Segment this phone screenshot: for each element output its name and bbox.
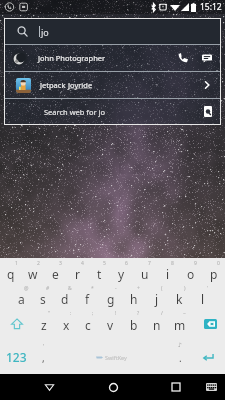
button[interactable]: John Photographer <box>5 45 220 71</box>
button[interactable]: Search web <box>196 99 220 124</box>
staticText: r <box>75 266 80 282</box>
staticText: a <box>18 291 25 307</box>
staticText: 8 <box>171 260 174 267</box>
button[interactable]: 8 <box>156 261 179 285</box>
staticText: # <box>46 285 50 292</box>
button[interactable]: Space <box>54 340 169 374</box>
button[interactable]: 6 <box>110 261 133 285</box>
staticText: : <box>70 310 72 317</box>
button[interactable]: 7 <box>133 261 156 285</box>
button[interactable]: Search web for jo <box>5 99 220 124</box>
staticText: g <box>107 291 115 307</box>
staticText: k <box>176 291 183 307</box>
button[interactable]: Recents <box>159 374 193 400</box>
staticText: / <box>161 310 163 317</box>
staticText: x <box>63 317 70 333</box>
staticText: Joyride <box>68 80 93 90</box>
staticText: c <box>85 317 91 333</box>
staticText: 4 <box>81 260 84 267</box>
staticText: 15:12 <box>200 1 222 13</box>
button[interactable]: Call <box>171 45 195 71</box>
button[interactable]: " <box>33 311 55 337</box>
button[interactable]: Back <box>31 374 68 400</box>
button[interactable]: Message <box>195 45 219 71</box>
button[interactable]: Open <box>195 72 219 98</box>
staticText: 5 <box>103 260 106 267</box>
button[interactable]: ? <box>122 311 145 337</box>
button[interactable]: ♪ <box>169 340 191 374</box>
staticText: ( <box>161 285 163 292</box>
button[interactable]: 9 <box>179 261 202 285</box>
staticText: jo <box>41 26 49 38</box>
staticText: e <box>52 266 59 282</box>
staticText: t <box>97 266 102 282</box>
button[interactable]: 4 <box>66 261 88 285</box>
button[interactable]: 123 <box>0 340 33 374</box>
button[interactable]: 1 <box>0 261 22 285</box>
staticText: 9 <box>194 260 197 267</box>
button[interactable]: Home <box>96 374 130 400</box>
button[interactable]: 0 <box>202 261 225 285</box>
staticText: 1 <box>15 260 18 267</box>
button[interactable]: @ <box>10 286 32 310</box>
button[interactable]: ; <box>77 311 99 337</box>
staticText: j <box>155 291 159 307</box>
button[interactable]: ( <box>145 286 168 310</box>
staticText: John Photographer <box>38 53 106 63</box>
button[interactable]: jo <box>5 19 220 44</box>
staticText: 123 <box>6 349 27 365</box>
button[interactable]: Backspace <box>191 311 225 337</box>
staticText: @ <box>24 285 29 292</box>
button[interactable]: 5 <box>88 261 110 285</box>
staticText: 2 <box>37 260 40 267</box>
staticText: u <box>141 266 149 282</box>
staticText: . <box>179 351 182 365</box>
staticText: & <box>68 285 72 292</box>
staticText: p <box>210 266 218 282</box>
staticText: + <box>137 285 140 292</box>
staticText: 3 <box>59 260 62 267</box>
staticText: s <box>40 291 46 307</box>
staticText: z <box>41 317 47 333</box>
button[interactable]: ) <box>168 286 191 310</box>
staticText: h <box>130 291 138 307</box>
staticText: ! <box>115 310 117 317</box>
staticText: , <box>42 351 45 365</box>
staticText: ) <box>184 285 186 292</box>
staticText: 7 <box>148 260 151 267</box>
button[interactable]: ' <box>191 286 214 310</box>
button[interactable]: + <box>122 286 145 310</box>
staticText: m <box>174 317 186 333</box>
staticText: 6 <box>125 260 128 267</box>
staticText: n <box>153 317 161 333</box>
button[interactable]: Enter <box>191 340 225 374</box>
button[interactable]: Jetpack <box>5 72 220 98</box>
staticText: b <box>130 317 138 333</box>
staticText: v <box>107 317 114 333</box>
button[interactable]: ! <box>99 311 122 337</box>
staticText: d <box>61 291 69 307</box>
staticText: * <box>91 285 94 292</box>
button[interactable]: & <box>54 286 76 310</box>
staticText: l <box>201 291 205 307</box>
button[interactable]: ‘ <box>33 340 54 374</box>
staticText: Search web for jo <box>44 107 106 117</box>
staticText: ? <box>137 310 140 317</box>
button[interactable]: Shift <box>0 311 33 337</box>
button[interactable]: Hide keyboard <box>203 374 220 400</box>
button[interactable]: ~ <box>168 311 191 337</box>
staticText: ; <box>92 310 94 317</box>
button[interactable]: * <box>76 286 99 310</box>
staticText: " <box>48 310 51 317</box>
staticText: Jetpack <box>40 80 68 90</box>
button[interactable]: / <box>145 311 168 337</box>
button[interactable]: 3 <box>44 261 66 285</box>
staticText: ‘ <box>43 342 45 350</box>
staticText: ~ <box>183 310 186 317</box>
button[interactable]: - <box>99 286 122 310</box>
staticText: q <box>7 266 15 282</box>
button[interactable]: 2 <box>22 261 44 285</box>
button[interactable]: : <box>55 311 77 337</box>
button[interactable]: # <box>32 286 54 310</box>
staticText: w <box>28 266 38 282</box>
